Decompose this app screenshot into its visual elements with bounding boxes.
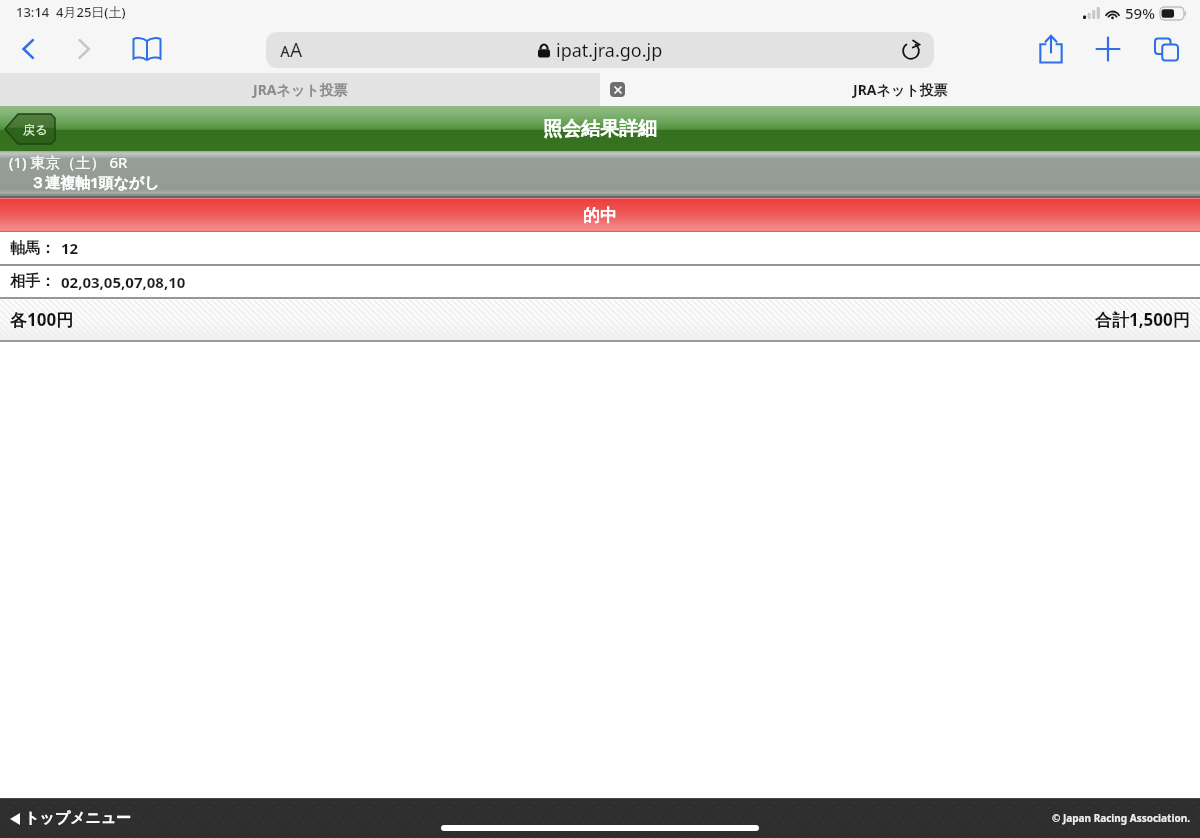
button[interactable]: Forward xyxy=(62,27,106,71)
button[interactable]: Close tab xyxy=(610,82,625,97)
button[interactable]: Back xyxy=(6,27,50,71)
staticText: 02,03,05,07,08,10 xyxy=(61,272,186,292)
button[interactable]: 的中 xyxy=(0,198,1200,232)
staticText: 戻る xyxy=(23,122,48,137)
staticText: 的中 xyxy=(583,205,617,226)
staticText: 各100円 xyxy=(10,308,74,331)
button[interactable]: JRAネット投票 xyxy=(0,73,600,106)
staticText: 13:14 4月25日(土) xyxy=(16,3,126,21)
button[interactable]: Close tab xyxy=(600,73,1200,106)
button[interactable]: Bookmarks xyxy=(125,27,169,71)
button[interactable]: 相手： xyxy=(0,266,1200,297)
staticText: 59% xyxy=(1125,3,1155,23)
button[interactable]: トップメニュー xyxy=(10,809,132,828)
staticText: 軸馬： xyxy=(10,239,55,258)
button[interactable]: 戻る xyxy=(5,114,55,144)
staticText: 12 xyxy=(61,238,79,258)
button[interactable]: New Tab xyxy=(1086,27,1130,71)
button[interactable]: Share xyxy=(1029,27,1073,71)
staticText: 相手： xyxy=(10,272,55,291)
staticText: 合計1,500円 xyxy=(1095,308,1190,331)
button[interactable]: 各100円 xyxy=(0,299,1200,340)
button[interactable]: Tabs xyxy=(1144,27,1188,71)
staticText: ３連複軸1頭ながし xyxy=(30,172,160,192)
staticText: トップメニュー xyxy=(24,809,132,828)
staticText: (1) 東京（土） 6R xyxy=(9,152,128,172)
staticText: ipat.jra.go.jp xyxy=(556,38,663,63)
button[interactable]: 軸馬： xyxy=(0,232,1200,264)
button[interactable]: ᴀA xyxy=(266,32,934,68)
staticText: JRAネット投票 xyxy=(853,80,948,99)
staticText: JRAネット投票 xyxy=(253,80,348,99)
staticText: ᴀA xyxy=(280,37,303,63)
staticText: © Japan Racing Association. xyxy=(1052,811,1190,825)
staticText: 照会結果詳細 xyxy=(543,117,657,141)
